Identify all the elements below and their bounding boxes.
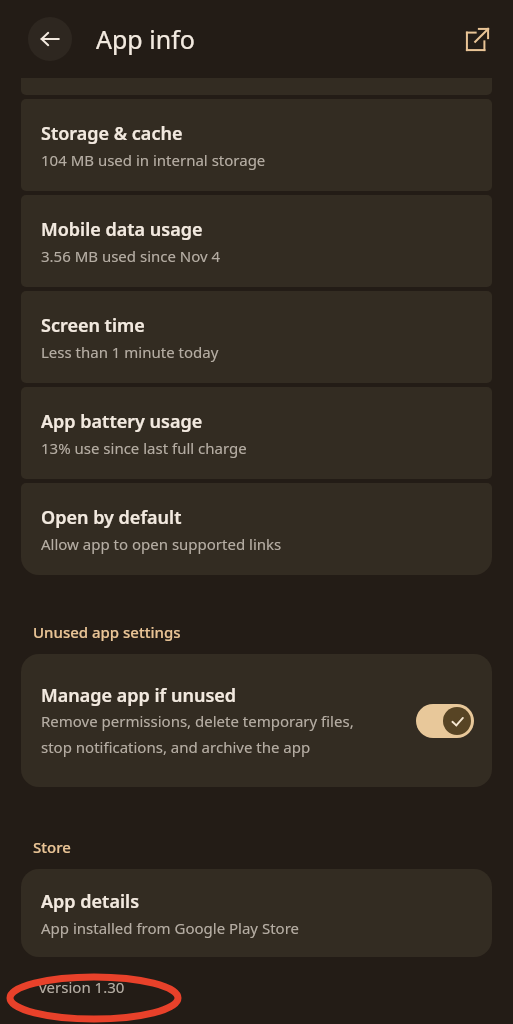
button[interactable]: Screen time <box>21 291 492 383</box>
staticText: 13% use since last full charge <box>41 438 247 458</box>
button[interactable]: Open app settings <box>453 15 501 63</box>
staticText: 3.56 MB used since Nov 4 <box>41 246 221 266</box>
staticText: Manage app if unused <box>41 683 237 708</box>
staticText: Screen time <box>41 313 145 338</box>
staticText: Store <box>33 837 71 857</box>
button[interactable]: Back <box>28 17 72 61</box>
staticText: App battery usage <box>41 409 203 434</box>
button[interactable]: Manage app if unused toggle <box>416 704 474 738</box>
button[interactable]: Open by default <box>21 483 492 575</box>
staticText: Unused app settings <box>33 622 181 642</box>
button[interactable]: Storage & cache <box>21 99 492 191</box>
staticText: Open by default <box>41 505 182 530</box>
staticText: App installed from Google Play Store <box>41 918 299 938</box>
staticText: Less than 1 minute today <box>41 342 219 362</box>
staticText: Remove permissions, delete temporary fil… <box>41 711 371 758</box>
button[interactable]: App battery usage <box>21 387 492 479</box>
staticText: Allow app to open supported links <box>41 534 282 554</box>
staticText: version 1.30 <box>39 977 125 997</box>
button[interactable]: Mobile data usage <box>21 195 492 287</box>
button[interactable]: App details <box>21 869 492 957</box>
staticText: 104 MB used in internal storage <box>41 150 266 170</box>
button[interactable]: Manage app if unused <box>21 654 492 787</box>
staticText: Mobile data usage <box>41 217 203 242</box>
staticText: App details <box>41 889 140 914</box>
staticText: Storage & cache <box>41 121 183 146</box>
staticText: App info <box>96 22 195 56</box>
